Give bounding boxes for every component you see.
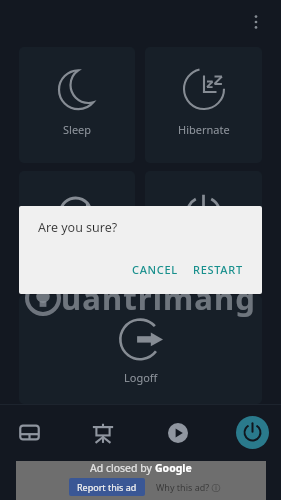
staticText: Ad closed by [90, 461, 155, 475]
button[interactable]: Report this ad [69, 478, 145, 496]
button[interactable]: Media keys [154, 405, 202, 460]
button[interactable]: Shutdown [145, 171, 262, 287]
staticText: Sleep [63, 122, 92, 137]
staticText: uantrimang [61, 277, 256, 319]
button[interactable]: Restart [19, 171, 135, 287]
staticText: RESTART [193, 262, 243, 277]
button[interactable]: Hibernate [145, 47, 262, 163]
staticText: Logoff [124, 370, 158, 385]
button[interactable]: More options [241, 7, 271, 37]
button[interactable]: RESTART [183, 257, 251, 282]
staticText: Are you sure? [38, 219, 118, 236]
staticText: Report this ad [77, 481, 137, 493]
button[interactable]: Logoff [19, 295, 262, 404]
button[interactable]: Why this ad? ⓘ [152, 478, 225, 496]
button[interactable]: Sleep [19, 47, 135, 163]
button[interactable]: Power options [228, 405, 276, 460]
button[interactable]: Touchpad [5, 405, 53, 460]
staticText: Why this ad? ⓘ [156, 481, 221, 493]
staticText: Google [155, 461, 192, 475]
staticText: CANCEL [132, 262, 178, 277]
staticText: Hibernate [178, 122, 230, 137]
button[interactable]: Presentation [79, 405, 127, 460]
button[interactable]: CANCEL [114, 257, 183, 282]
